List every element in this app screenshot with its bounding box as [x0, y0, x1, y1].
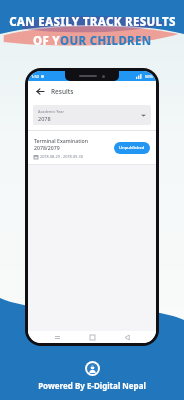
staticText: OUR CHILDREN — [60, 33, 152, 49]
staticText: Results — [51, 87, 74, 96]
staticText: 1:52 — [31, 74, 39, 79]
staticText: Unpublished — [119, 145, 145, 151]
button[interactable]: Home — [86, 331, 98, 343]
button[interactable]: Back — [121, 331, 133, 343]
button[interactable]: Academic Year — [33, 105, 151, 125]
staticText: OF Y — [33, 33, 60, 49]
staticText: Terminal Examination 2078/2079 — [34, 137, 114, 151]
staticText: Powered By E-Digital Nepal — [38, 380, 146, 391]
staticText: 2078-08-29 - 2078-09-30 — [40, 154, 83, 159]
button[interactable]: Back — [34, 85, 46, 97]
button[interactable]: Unpublished — [114, 142, 150, 154]
staticText: 2078 — [38, 115, 51, 122]
staticText: 56% — [145, 74, 153, 79]
staticText: CAN EASILY TRACK RESULTS — [9, 14, 176, 30]
staticText: Academic Year — [38, 109, 64, 114]
button[interactable]: Terminal Examination 2078/2079 — [28, 136, 156, 160]
button[interactable]: Recents — [51, 331, 63, 343]
